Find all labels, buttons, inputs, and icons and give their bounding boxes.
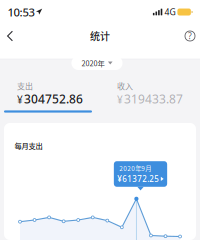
- button[interactable]: Help: [180, 24, 200, 48]
- staticText: ?: [188, 30, 192, 42]
- button[interactable]: 2020年: [71, 56, 123, 70]
- staticText: 统计: [90, 29, 110, 43]
- staticText: 每月支出: [14, 140, 42, 151]
- staticText: ¥61372.25: [117, 173, 159, 184]
- staticText: 4G: [165, 6, 176, 18]
- staticText: 304752.86: [24, 91, 83, 107]
- staticText: 319433.87: [124, 91, 183, 107]
- staticText: 2020年9月: [119, 164, 151, 173]
- staticText: 支出: [17, 80, 33, 92]
- button[interactable]: 支出: [17, 80, 100, 108]
- staticText: 收入: [117, 80, 133, 92]
- button[interactable]: 收入: [117, 80, 200, 108]
- staticText: ¥: [17, 93, 23, 106]
- staticText: 2020年: [81, 58, 104, 68]
- staticText: 10:53: [7, 4, 34, 20]
- button[interactable]: Back: [0, 24, 20, 48]
- staticText: ¥: [117, 93, 123, 106]
